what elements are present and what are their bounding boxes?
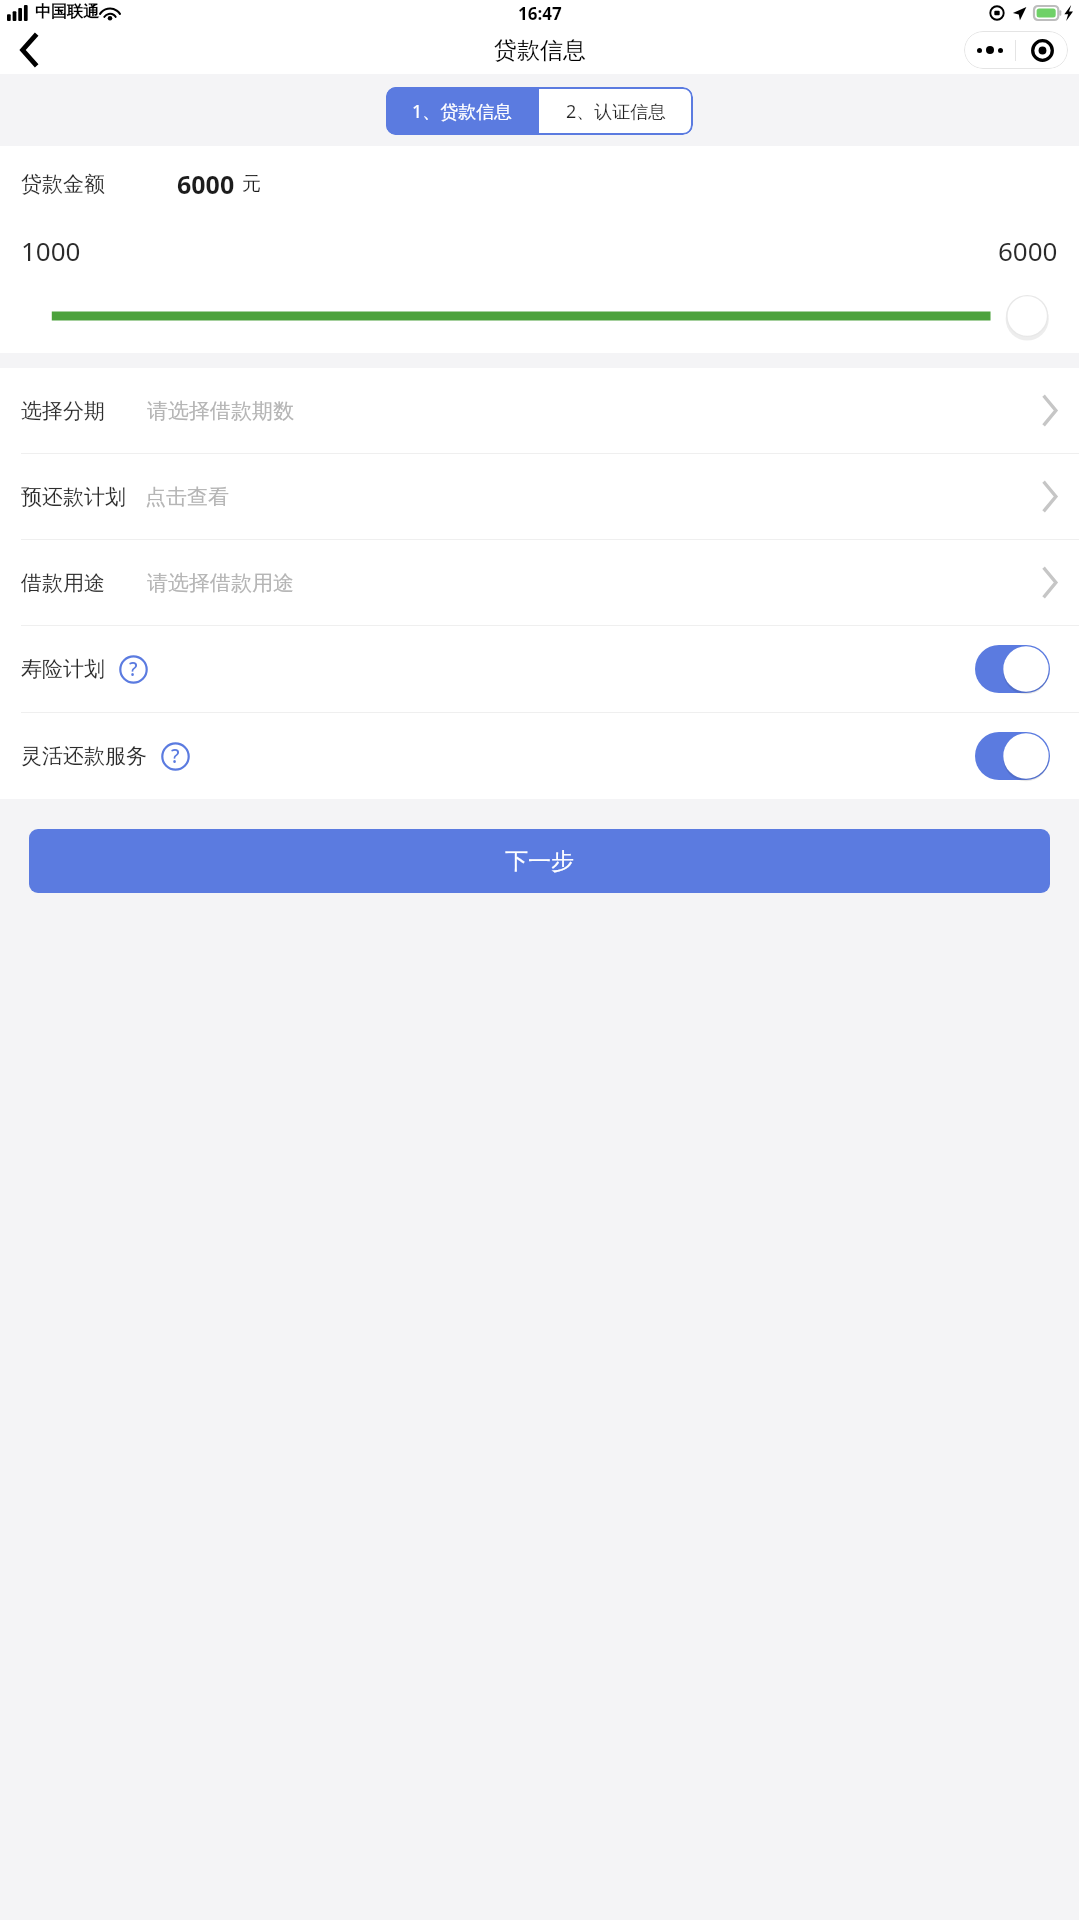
- staticText: 预还款计划: [21, 484, 126, 510]
- staticText: 1、贷款信息: [412, 99, 513, 124]
- staticText: 1000: [21, 233, 81, 268]
- button[interactable]: 更多: [964, 31, 1015, 69]
- staticText: 选择分期: [21, 398, 105, 424]
- staticText: 贷款金额: [21, 171, 105, 197]
- staticText: 点击查看: [145, 484, 229, 510]
- button[interactable]: 下一步: [29, 829, 1050, 893]
- button[interactable]: 开关，已开启: [975, 645, 1050, 693]
- staticText: ?: [129, 656, 138, 682]
- staticText: 下一步: [505, 847, 574, 876]
- button[interactable]: 开关，已开启: [975, 732, 1050, 780]
- staticText: 贷款信息: [494, 36, 586, 65]
- button[interactable]: 选择分期: [0, 368, 1079, 453]
- staticText: 6000: [177, 167, 235, 201]
- staticText: 16:47: [518, 2, 562, 25]
- button[interactable]: 说明: [116, 652, 150, 686]
- button[interactable]: 小程序菜单: [1016, 31, 1068, 69]
- staticText: 请选择借款期数: [147, 398, 294, 424]
- staticText: 6000: [998, 233, 1058, 268]
- staticText: 请选择借款用途: [147, 570, 294, 596]
- button[interactable]: 2、认证信息: [539, 87, 693, 135]
- staticText: 元: [242, 172, 261, 196]
- button[interactable]: 借款用途: [0, 540, 1079, 625]
- staticText: 借款用途: [21, 570, 105, 596]
- staticText: 中国联通: [35, 2, 99, 22]
- staticText: 灵活还款服务: [21, 743, 147, 769]
- button[interactable]: 返回: [0, 26, 58, 74]
- staticText: ?: [171, 743, 180, 769]
- staticText: 寿险计划: [21, 656, 105, 682]
- button[interactable]: 预还款计划: [0, 454, 1079, 539]
- staticText: 2、认证信息: [566, 99, 667, 124]
- button[interactable]: 金额滑块: [0, 279, 1079, 353]
- button[interactable]: 1、贷款信息: [386, 87, 539, 135]
- button[interactable]: 说明: [158, 739, 192, 773]
